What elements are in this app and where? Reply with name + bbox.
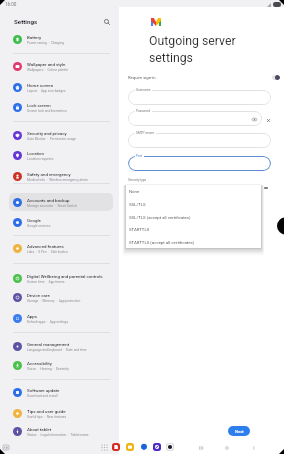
- button[interactable]: Clear: [265, 117, 271, 123]
- button[interactable]: Location: [9, 146, 113, 164]
- button[interactable]: Google: [9, 213, 113, 231]
- staticText: SSL/TLS: [129, 202, 146, 207]
- staticText: Useful tips · New features: [27, 415, 67, 419]
- staticText: Wallpapers · Colour palette: [27, 68, 69, 72]
- staticText: Manage accounts · Smart Switch: [27, 204, 77, 208]
- button[interactable]: Require sign-in: [124, 70, 280, 84]
- staticText: About tablet: [27, 427, 52, 432]
- staticText: Power saving · Charging: [27, 41, 64, 45]
- staticText: Screen lock and biometrics: [27, 109, 67, 113]
- button[interactable]: [128, 133, 271, 148]
- staticText: SSL/TLS (accept all certificates): [129, 215, 191, 220]
- staticText: Labs · S Pen · Side button: [27, 250, 68, 254]
- staticText: Port: [136, 154, 143, 158]
- staticText: Username: [136, 88, 151, 92]
- button[interactable]: Security and privacy: [9, 126, 113, 144]
- staticText: None: [129, 189, 140, 194]
- staticText: Screen time · App timers: [27, 280, 65, 284]
- button[interactable]: STARTTLS: [126, 223, 261, 236]
- staticText: Auto Blocker · Permission usage: [27, 137, 77, 141]
- button[interactable]: Tips and user guide: [9, 404, 113, 422]
- button[interactable]: Accounts and backup: [9, 193, 113, 211]
- staticText: SMTP server: [136, 131, 155, 135]
- staticText: Security and privacy: [27, 131, 67, 136]
- staticText: Next: [235, 429, 244, 434]
- staticText: Security type: [128, 178, 147, 182]
- staticText: Default apps · App settings: [27, 320, 69, 324]
- staticText: Layout · App icon badges: [27, 89, 66, 93]
- button[interactable]: None: [126, 185, 261, 198]
- button[interactable]: Back: [249, 443, 259, 453]
- button[interactable]: About tablet: [9, 422, 113, 440]
- staticText: Software update: [27, 388, 60, 393]
- staticText: Tips and user guide: [27, 409, 66, 414]
- button[interactable]: Camera: [165, 442, 175, 452]
- staticText: Advanced features: [27, 244, 64, 249]
- button[interactable]: Recents: [196, 443, 206, 453]
- staticText: Home screen: [27, 83, 54, 88]
- button[interactable]: [128, 111, 262, 126]
- button[interactable]: SSL/TLS (accept all certificates): [126, 211, 261, 224]
- button[interactable]: Home screen: [9, 78, 113, 96]
- button[interactable]: Accessibility: [9, 356, 113, 374]
- staticText: Apps: [27, 314, 38, 319]
- button[interactable]: Wallpaper and style: [9, 57, 113, 75]
- staticText: Accounts and backup: [27, 198, 70, 203]
- button[interactable]: [128, 90, 271, 105]
- staticText: Battery: [27, 35, 42, 40]
- staticText: Safety and emergency: [27, 172, 71, 177]
- button[interactable]: Home: [222, 443, 232, 453]
- staticText: STARTTLS (accept all certificates): [129, 240, 195, 245]
- staticText: Accessibility: [27, 361, 52, 366]
- staticText: Location: [27, 151, 45, 156]
- staticText: Digital Wellbeing and parental controls: [27, 274, 103, 279]
- button[interactable]: Lock screen: [9, 98, 113, 116]
- button[interactable]: Calendar: [152, 442, 162, 452]
- staticText: Medical info · Wireless emergency alerts: [27, 178, 88, 182]
- staticText: Lock screen: [27, 103, 51, 108]
- button[interactable]: [128, 156, 271, 171]
- button[interactable]: Messages: [139, 442, 149, 452]
- staticText: Outgoing server settings: [149, 34, 236, 65]
- staticText: Google services: [27, 224, 51, 228]
- staticText: Google: [27, 218, 41, 223]
- staticText: Vision · Hearing · Dexterity: [27, 367, 69, 371]
- button[interactable]: Next: [228, 426, 250, 436]
- button[interactable]: Show password: [251, 116, 257, 122]
- staticText: Wallpaper and style: [27, 62, 66, 67]
- staticText: General management: [27, 342, 70, 347]
- staticText: Storage · Memory · App protection: [27, 299, 81, 303]
- button[interactable]: Office: [111, 442, 121, 452]
- button[interactable]: SSL/TLS: [126, 198, 261, 211]
- button[interactable]: Safety and emergency: [9, 167, 113, 185]
- button[interactable]: Apps: [9, 309, 113, 327]
- button[interactable]: Battery: [9, 30, 113, 48]
- staticText: Require sign-in: [128, 75, 156, 80]
- staticText: Settings: [14, 18, 38, 25]
- button[interactable]: Digital Wellbeing and parental controls: [9, 269, 113, 287]
- button[interactable]: Search: [100, 15, 113, 28]
- staticText: Location requests: [27, 157, 54, 161]
- button[interactable]: All apps: [100, 443, 109, 452]
- button[interactable]: Software update: [9, 383, 113, 401]
- button[interactable]: Device care: [9, 288, 113, 306]
- staticText: Device care: [27, 293, 50, 298]
- button[interactable]: Files: [125, 442, 135, 452]
- staticText: Download and install: [27, 394, 58, 398]
- staticText: Password: [136, 109, 151, 113]
- button[interactable]: Advanced features: [9, 239, 113, 257]
- button[interactable]: Hide navigation bar: [1, 443, 10, 452]
- staticText: 16:00: [5, 2, 17, 7]
- staticText: Language and keyboard · Date and time: [27, 348, 87, 352]
- button[interactable]: STARTTLS (accept all certificates): [126, 236, 261, 249]
- staticText: STARTTLS: [129, 227, 150, 232]
- staticText: Status · Legal information · Tablet name: [27, 433, 89, 437]
- button[interactable]: General management: [9, 337, 113, 355]
